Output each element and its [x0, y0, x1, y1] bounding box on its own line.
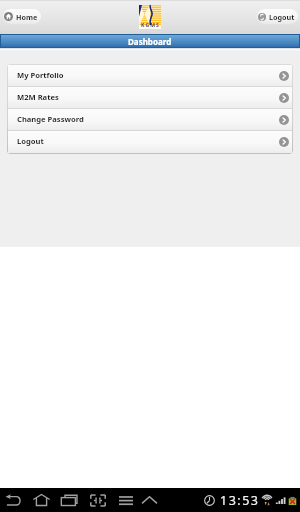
- staticText: KGMS: [141, 22, 160, 29]
- staticText: Logout: [269, 12, 295, 22]
- staticText: M2M Rates: [17, 92, 59, 102]
- button[interactable]: Logout: [8, 131, 292, 153]
- button[interactable]: Home: [3, 9, 41, 24]
- button[interactable]: Menu: [115, 488, 137, 512]
- button[interactable]: Hide navigation: [138, 488, 160, 512]
- staticText: 13:53: [220, 492, 260, 509]
- button[interactable]: Change Password: [8, 109, 292, 130]
- button[interactable]: Home: [30, 488, 52, 512]
- staticText: Dashboard: [128, 36, 172, 47]
- staticText: My Portfolio: [17, 70, 64, 80]
- button[interactable]: Screenshot: [87, 488, 109, 512]
- button[interactable]: M2M Rates: [8, 87, 292, 108]
- button[interactable]: My Portfolio: [8, 65, 292, 86]
- staticText: Logout: [17, 136, 44, 146]
- button[interactable]: Logout: [257, 9, 298, 24]
- staticText: Change Password: [17, 114, 84, 124]
- button[interactable]: Back: [2, 488, 24, 512]
- staticText: Home: [16, 12, 38, 22]
- button[interactable]: Recent apps: [58, 488, 80, 512]
